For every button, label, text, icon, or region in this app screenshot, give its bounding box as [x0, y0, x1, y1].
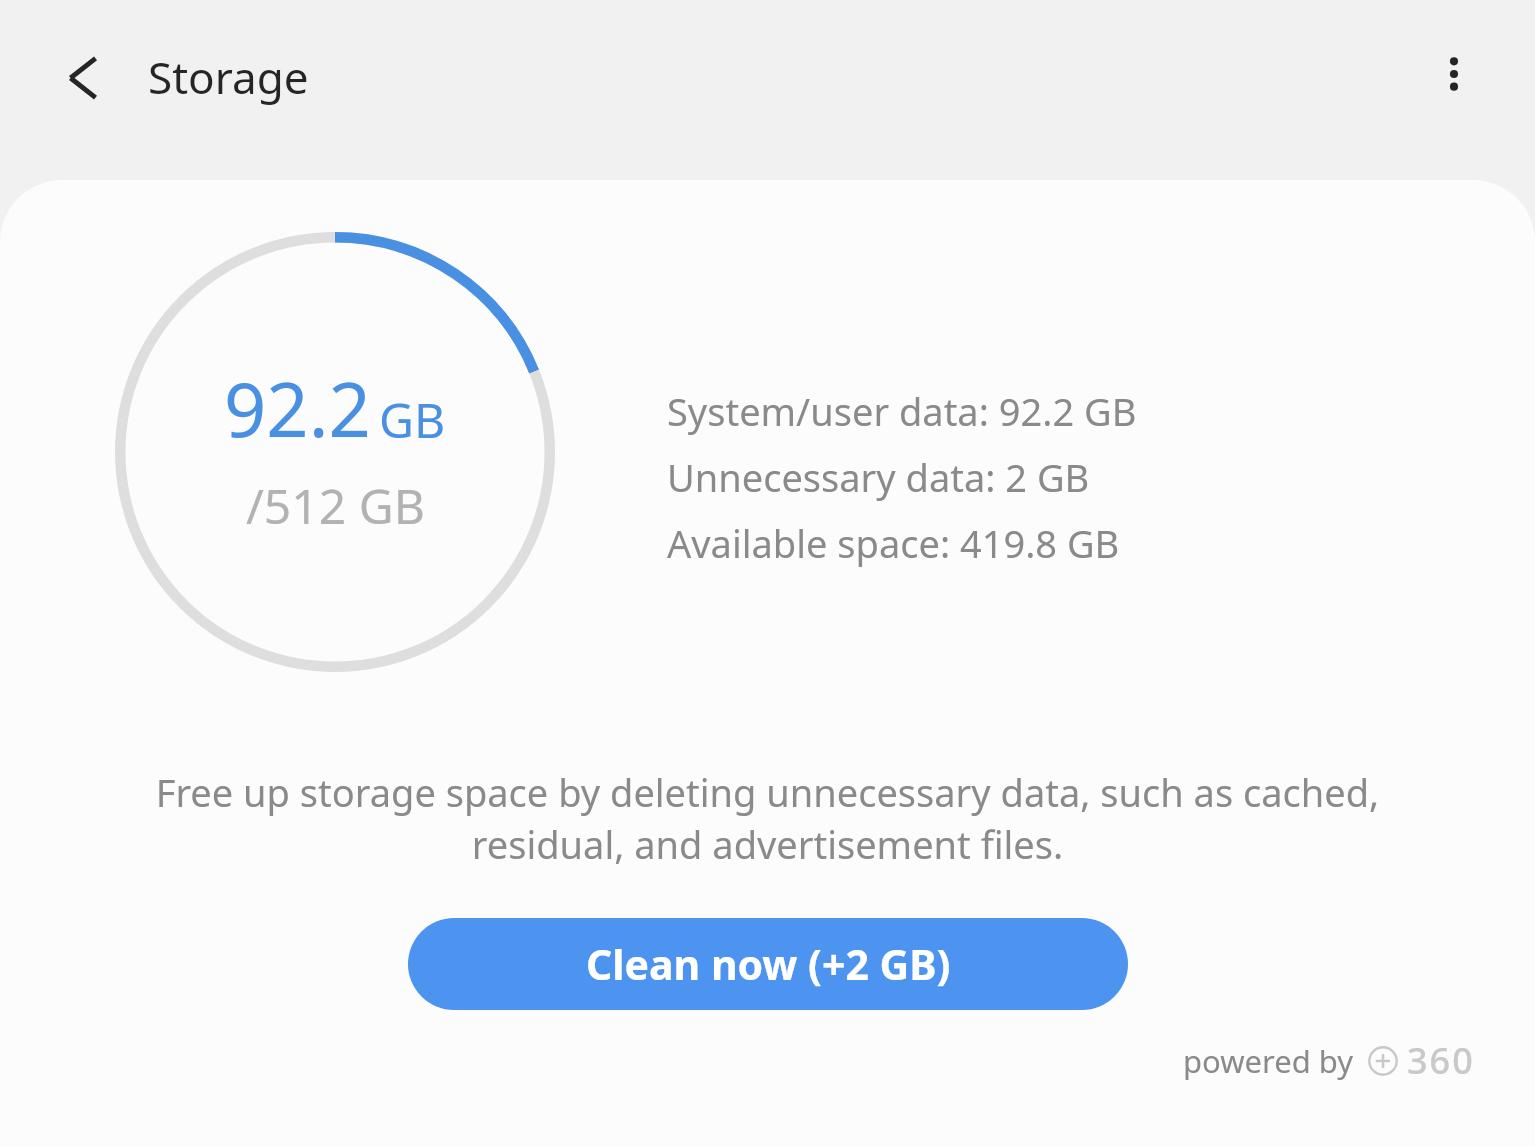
button[interactable]: More options	[1406, 26, 1502, 122]
staticText: Available space: 419.8 GB	[667, 517, 1120, 569]
staticText: /512 GB	[246, 473, 425, 538]
staticText: Free up storage space by deleting unnece…	[128, 766, 1407, 870]
staticText: 360	[1407, 1036, 1475, 1085]
button[interactable]: Back	[39, 33, 129, 123]
staticText: Unnecessary data: 2 GB	[667, 451, 1090, 503]
staticText: powered by	[1183, 1040, 1354, 1082]
staticText: 92.2	[224, 358, 371, 459]
button[interactable]: Clean now (+2 GB)	[408, 918, 1128, 1010]
staticText: GB	[379, 387, 446, 452]
staticText: System/user data: 92.2 GB	[667, 385, 1137, 437]
staticText: Storage	[148, 47, 309, 107]
staticText: Clean now (+2 GB)	[586, 936, 951, 992]
